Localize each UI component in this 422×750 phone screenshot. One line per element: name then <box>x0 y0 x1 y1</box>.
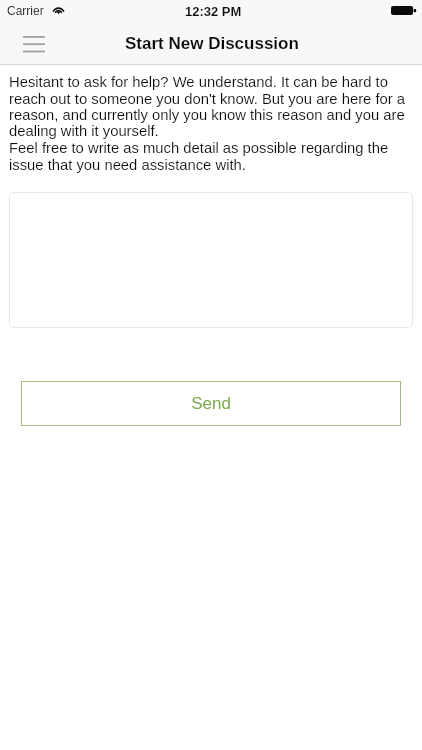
button[interactable]: Open navigation menu <box>0 22 60 64</box>
button[interactable]: Send <box>21 381 401 426</box>
staticText: Carrier <box>7 4 44 17</box>
staticText: Feel free to write as much detail as pos… <box>9 140 413 173</box>
staticText: Start New Discussion <box>125 34 299 53</box>
button[interactable]: Message input <box>9 192 413 328</box>
staticText: Send <box>191 394 231 413</box>
staticText: Hesitant to ask for help? We understand.… <box>9 74 413 139</box>
staticText: 12:32 PM <box>185 4 242 19</box>
